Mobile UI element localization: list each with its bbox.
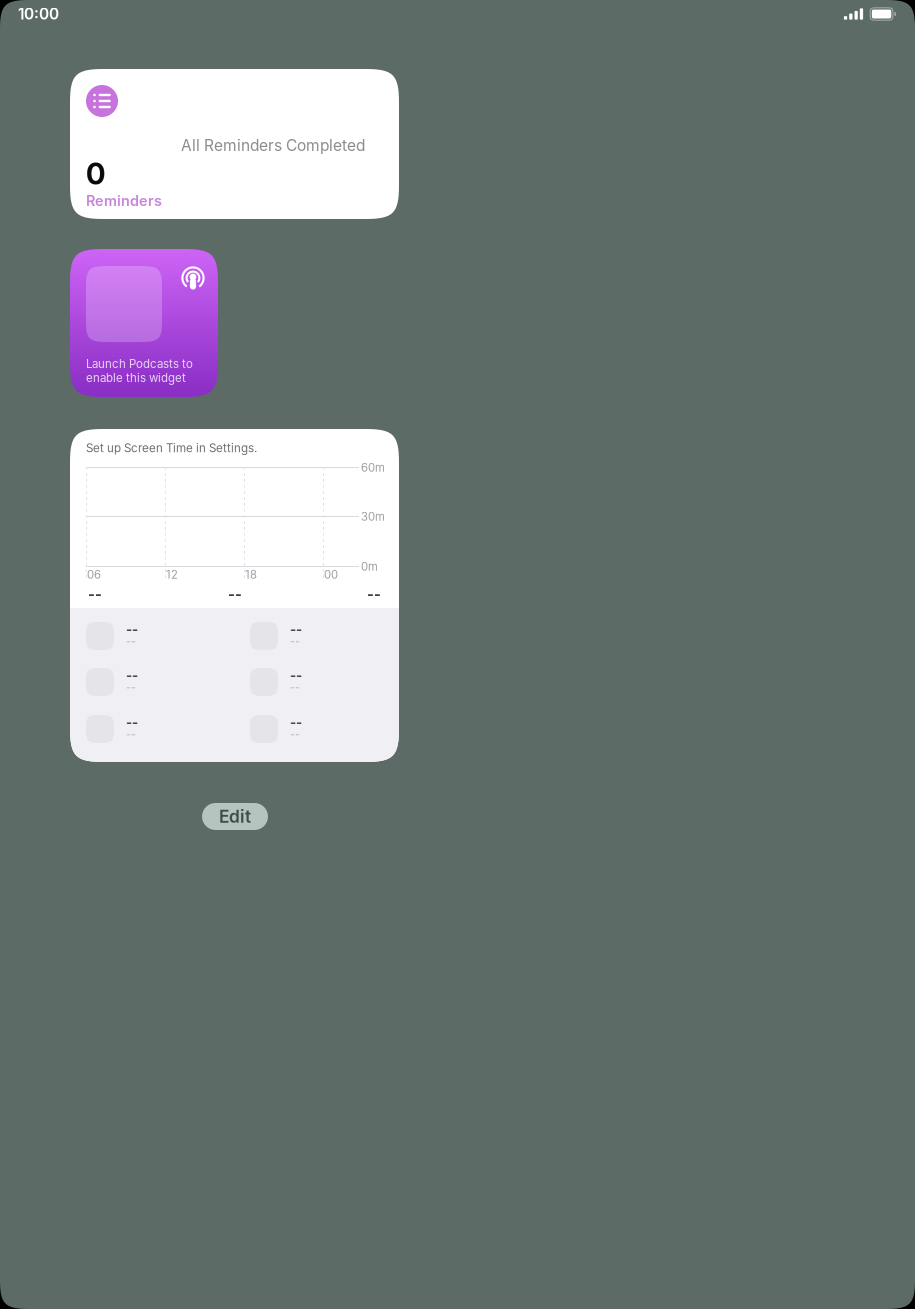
- staticText: --: [126, 681, 136, 694]
- staticText: --: [126, 667, 138, 683]
- staticText: --: [88, 585, 102, 603]
- staticText: enable this widget: [86, 371, 186, 385]
- staticText: --: [126, 728, 136, 741]
- staticText: --: [126, 621, 138, 637]
- staticText: 30m: [361, 510, 385, 524]
- staticText: --: [367, 585, 381, 603]
- staticText: 00: [324, 568, 338, 582]
- staticText: Edit: [219, 806, 251, 827]
- staticText: --: [290, 714, 302, 730]
- staticText: --: [290, 681, 300, 694]
- staticText: 60m: [361, 461, 385, 475]
- staticText: 0: [86, 156, 105, 191]
- staticText: --: [126, 635, 136, 648]
- staticText: Reminders: [86, 192, 162, 209]
- staticText: --: [126, 714, 138, 730]
- staticText: Launch Podcasts to: [86, 357, 193, 371]
- staticText: Set up Screen Time in Settings.: [86, 441, 257, 455]
- staticText: --: [228, 585, 242, 603]
- staticText: 10:00: [18, 5, 59, 23]
- button[interactable]: Screen Time widget, Set up Screen Time i…: [70, 429, 399, 762]
- staticText: --: [290, 621, 302, 637]
- button[interactable]: Edit: [202, 803, 268, 830]
- staticText: 0m: [361, 560, 378, 574]
- staticText: 12: [166, 568, 178, 582]
- staticText: --: [290, 667, 302, 683]
- button[interactable]: Podcasts widget, Launch Podcasts to enab…: [70, 249, 218, 397]
- button[interactable]: Reminders widget, All Reminders Complete…: [70, 69, 399, 219]
- staticText: --: [290, 728, 300, 741]
- staticText: 18: [245, 568, 257, 582]
- staticText: 06: [87, 568, 101, 582]
- staticText: --: [290, 635, 300, 648]
- staticText: All Reminders Completed: [181, 136, 365, 155]
